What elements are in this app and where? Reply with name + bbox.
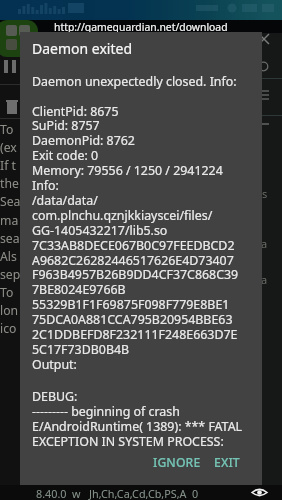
staticText: Als: [0, 248, 17, 265]
staticText: GG-1405432217/lib5.so: [32, 222, 168, 239]
staticText: To: [0, 121, 14, 138]
staticText: Daemon unexpectedly closed. Info:: [32, 73, 237, 90]
other: Close: [259, 34, 269, 44]
other: Visibility: [252, 488, 267, 497]
staticText: A9682C26282446517626E4D73407: [32, 252, 234, 269]
staticText: To: [0, 284, 14, 301]
staticText: /data/data/: [32, 192, 98, 209]
other: Tools: [258, 124, 269, 135]
staticText: com.plnchu.qznjkkiayscei/files/: [32, 207, 213, 224]
button[interactable]: IGNORE: [147, 449, 207, 475]
staticText: http://gameguardian.net/download: [54, 20, 228, 34]
staticText: E/AndroidRuntime( 1389): *** FATAL: [32, 418, 243, 435]
staticText: DaemonPid: 8762: [32, 132, 135, 149]
staticText: 75DCA0A881CCA795B20954BBE63: [32, 311, 233, 328]
staticText: Output:: [32, 356, 77, 373]
button[interactable]: EXIT: [206, 449, 248, 475]
staticText: (ex: [0, 139, 17, 156]
staticText: a: [261, 272, 268, 287]
staticText: sea: [0, 230, 20, 247]
staticText: Sea: [0, 193, 21, 210]
staticText: ma: [0, 212, 19, 229]
staticText: 55329B1F1F69875F098F779E8BE1: [32, 296, 230, 313]
staticText: IGNORE: [153, 454, 201, 471]
staticText: lon: [0, 302, 19, 319]
staticText: ClientPid: 8675: [32, 103, 119, 120]
staticText: 8.40.0 w Jh,Ch,Ca,Cd,Cb,PS,A 0: [36, 486, 199, 500]
staticText: DEBUG:: [32, 388, 78, 405]
staticText: sep: [0, 266, 21, 283]
staticText: 2C1DDBEFD8F232111F248E663D7E: [32, 326, 238, 343]
staticText: 7C33AB8DECE067B0C97FEEDBCD2: [32, 237, 235, 254]
staticText: Exit code: 0: [32, 147, 99, 164]
staticText: --------- beginning of crash: [32, 403, 180, 420]
staticText: EXIT: [214, 454, 240, 471]
other: Menu: [258, 90, 269, 101]
staticText: 7BE8024E9766B: [32, 281, 126, 298]
other: Refresh: [258, 61, 269, 72]
staticText: F963B4957B26B9DD4CF37C868C39: [32, 266, 239, 283]
staticText: 5C17F73DB0B4B: [32, 341, 130, 358]
staticText: Daemon exited: [32, 39, 133, 58]
staticText: the: [0, 175, 19, 192]
staticText: s: [262, 186, 268, 201]
staticText: Info:: [32, 177, 59, 194]
staticText: Memory: 79556 / 1250 / 2941224: [32, 162, 223, 179]
staticText: EXCEPTION IN SYSTEM PROCESS:: [32, 433, 224, 450]
staticText: SuPid: 8757: [32, 117, 100, 134]
staticText: ico: [0, 320, 17, 337]
staticText: a: [261, 236, 268, 251]
staticText: If t: [0, 157, 16, 174]
